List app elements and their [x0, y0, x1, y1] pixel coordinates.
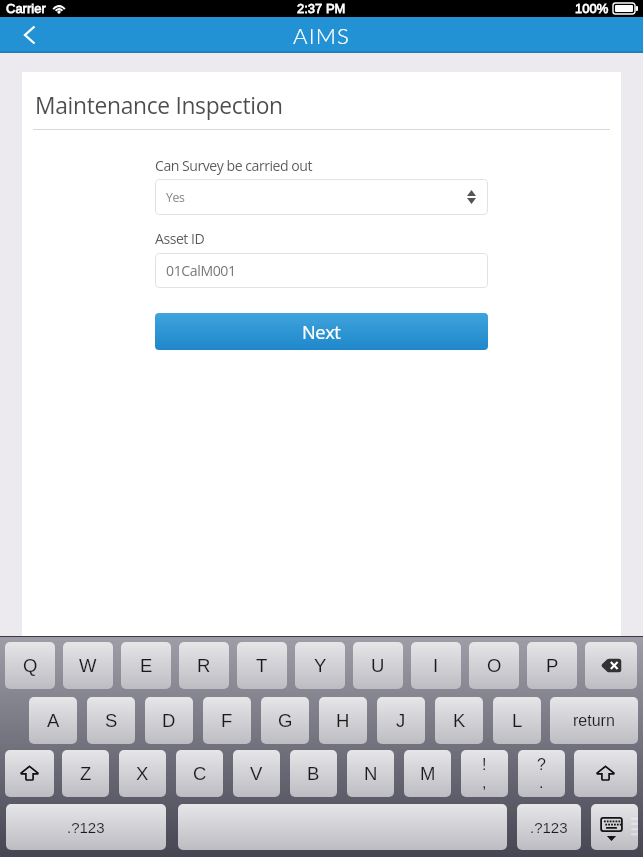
staticText: Y: [314, 655, 327, 676]
button[interactable]: H: [319, 697, 367, 744]
staticText: B: [307, 763, 320, 784]
button[interactable]: U: [353, 642, 403, 689]
button[interactable]: G: [261, 697, 309, 744]
staticText: D: [162, 710, 176, 731]
staticText: 2:37 PM: [297, 1, 346, 16]
button[interactable]: Shift: [574, 750, 637, 797]
button[interactable]: F: [203, 697, 251, 744]
staticText: C: [193, 763, 207, 784]
button[interactable]: E: [121, 642, 171, 689]
button[interactable]: J: [377, 697, 425, 744]
staticText: Maintenance Inspection: [35, 90, 283, 121]
staticText: .?123: [530, 819, 568, 836]
staticText: O: [487, 655, 502, 676]
button[interactable]: S: [87, 697, 135, 744]
staticText: Next: [302, 319, 341, 344]
button[interactable]: Backspace: [585, 642, 637, 689]
staticText: ,: [482, 774, 487, 792]
staticText: J: [396, 710, 406, 731]
staticText: N: [364, 763, 378, 784]
button[interactable]: L: [493, 697, 541, 744]
button[interactable]: .?123: [6, 804, 166, 850]
button[interactable]: Back: [0, 18, 58, 52]
staticText: R: [197, 655, 211, 676]
staticText: .?123: [67, 819, 105, 836]
staticText: A: [47, 710, 60, 731]
staticText: T: [256, 655, 268, 676]
button[interactable]: T: [237, 642, 287, 689]
staticText: return: [573, 712, 615, 730]
button[interactable]: Z: [62, 750, 109, 797]
button[interactable]: .?123: [517, 804, 581, 850]
button[interactable]: !: [461, 750, 508, 797]
button[interactable]: Yes: [155, 179, 488, 215]
button[interactable]: N: [347, 750, 394, 797]
button[interactable]: Space: [178, 804, 507, 850]
button[interactable]: Next: [155, 313, 488, 350]
button[interactable]: D: [145, 697, 193, 744]
staticText: I: [433, 655, 439, 676]
button[interactable]: W: [63, 642, 113, 689]
staticText: .: [539, 774, 544, 792]
staticText: Q: [23, 655, 38, 676]
button[interactable]: R: [179, 642, 229, 689]
button[interactable]: return: [550, 697, 638, 744]
button[interactable]: ?: [518, 750, 565, 797]
staticText: F: [221, 710, 233, 731]
staticText: S: [105, 710, 118, 731]
staticText: Carrier: [6, 1, 46, 16]
button[interactable]: X: [119, 750, 166, 797]
button[interactable]: Hide keyboard: [591, 804, 638, 850]
button[interactable]: A: [29, 697, 77, 744]
staticText: U: [371, 655, 385, 676]
staticText: M: [420, 763, 436, 784]
staticText: AIMS: [293, 22, 351, 49]
button[interactable]: B: [290, 750, 337, 797]
button[interactable]: Q: [5, 642, 55, 689]
staticText: E: [140, 655, 153, 676]
button[interactable]: C: [176, 750, 223, 797]
staticText: Yes: [166, 189, 185, 206]
staticText: Z: [80, 763, 92, 784]
button[interactable]: Y: [295, 642, 345, 689]
staticText: 01CalM001: [166, 261, 236, 280]
staticText: Asset ID: [155, 229, 205, 248]
staticText: H: [336, 710, 350, 731]
staticText: !: [482, 756, 487, 774]
button[interactable]: O: [469, 642, 519, 689]
staticText: G: [278, 710, 293, 731]
staticText: ?: [537, 756, 546, 774]
button[interactable]: M: [404, 750, 451, 797]
staticText: K: [453, 710, 466, 731]
staticText: 100%: [575, 1, 609, 16]
button[interactable]: K: [435, 697, 483, 744]
staticText: V: [250, 763, 263, 784]
staticText: X: [136, 763, 149, 784]
staticText: Can Survey be carried out: [155, 156, 313, 175]
button[interactable]: I: [411, 642, 461, 689]
button[interactable]: Shift: [5, 750, 54, 797]
staticText: L: [512, 710, 523, 731]
staticText: P: [546, 655, 559, 676]
staticText: W: [79, 655, 97, 676]
button[interactable]: 01CalM001: [155, 253, 488, 288]
button[interactable]: V: [233, 750, 280, 797]
button[interactable]: P: [527, 642, 577, 689]
